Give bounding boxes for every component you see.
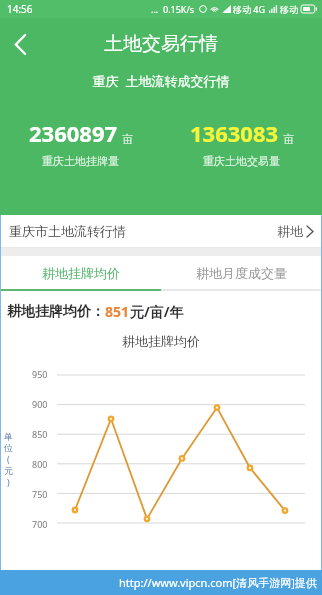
staticText: 移动 [280,4,298,15]
staticText: 700 [32,518,48,530]
staticText: ... [151,3,159,15]
staticText: 0.15K/s [163,3,195,15]
staticText: 耕地月度成交量 [196,265,287,281]
staticText: 移动 4G [233,3,266,15]
staticText: 单 [4,431,13,442]
staticText: 土地交易行情 [104,32,218,56]
button[interactable]: 1363083 [161,118,322,168]
staticText: 900 [32,398,48,410]
button[interactable]: 耕地月度成交量 [161,256,322,289]
staticText: 950 [32,368,48,380]
staticText: 重庆土地交易量 [203,154,280,168]
staticText: 元 [4,465,13,476]
staticText: ) [7,476,10,488]
staticText: 800 [32,458,48,470]
staticText: 耕地挂牌均价 [122,333,200,349]
staticText: 重庆 土地流转成交行情 [0,72,322,90]
staticText: 耕地 [277,223,303,239]
button[interactable]: Back [0,27,40,61]
staticText: 重庆市土地流转行情 [9,223,126,239]
staticText: ( [7,453,10,465]
staticText: 851 [105,302,130,321]
staticText: 位 [4,442,13,453]
staticText: 元/亩/年 [130,302,184,321]
staticText: 2360897 [29,118,118,148]
staticText: 重庆土地挂牌量 [42,154,119,168]
staticText: 1363083 [190,118,279,148]
button[interactable]: 2360897 [0,118,161,168]
staticText: 750 [32,488,48,500]
staticText: 亩 [122,132,133,146]
staticText: 耕地挂牌均价 [42,265,120,281]
button[interactable]: 耕地挂牌均价 [0,256,161,289]
staticText: 亩 [283,132,294,146]
staticText: 耕地挂牌均价： [7,303,105,321]
staticText: 850 [32,428,48,440]
button[interactable]: 重庆市土地流转行情 [0,215,322,247]
staticText: 14:56 [7,2,33,16]
staticText: http://www.vipcn.com[清风手游网]提供 [119,575,317,590]
